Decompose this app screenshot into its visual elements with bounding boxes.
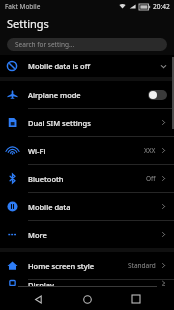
button[interactable]: Dual SIM settings	[0, 109, 174, 136]
staticText: Display	[28, 280, 160, 286]
button[interactable]: Wi-Fi	[0, 137, 174, 164]
button[interactable]: Bluetooth	[0, 165, 174, 192]
button[interactable]: Home screen style	[0, 252, 174, 279]
button[interactable]: Home	[76, 288, 98, 310]
staticText: Fakt Mobile	[5, 2, 41, 11]
staticText: 20:42	[153, 2, 170, 11]
staticText: More	[28, 230, 160, 240]
button[interactable]: Mobile data is off	[0, 55, 174, 77]
staticText: Search for setting...	[15, 40, 75, 49]
staticText: Mobile data	[28, 202, 160, 212]
staticText: Airplane mode	[28, 90, 148, 100]
staticText: Settings	[7, 16, 49, 31]
staticText: Off	[146, 174, 156, 183]
button[interactable]: Back	[27, 288, 49, 310]
button[interactable]: Search for setting...	[7, 38, 167, 51]
staticText: Home screen style	[28, 261, 128, 271]
button[interactable]: Mobile data	[0, 193, 174, 220]
staticText: Wi-Fi	[28, 146, 144, 156]
staticText: Mobile data is off	[28, 61, 160, 71]
staticText: XXX	[144, 146, 156, 155]
other: Expand	[160, 63, 167, 70]
button[interactable]: Display	[0, 280, 174, 286]
button[interactable]: Airplane mode toggle	[148, 90, 167, 100]
button[interactable]: More	[0, 221, 174, 248]
staticText: Dual SIM settings	[28, 118, 160, 128]
staticText: Bluetooth	[28, 174, 146, 184]
button[interactable]: Airplane mode	[0, 81, 174, 108]
staticText: Standard	[128, 261, 156, 270]
button[interactable]: Recent apps	[125, 288, 147, 310]
